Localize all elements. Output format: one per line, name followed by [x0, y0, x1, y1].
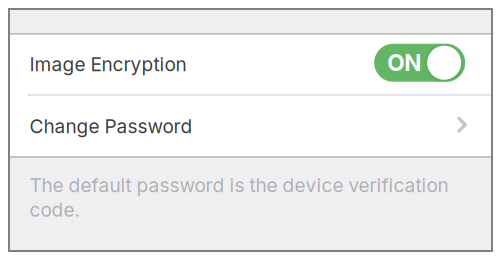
staticText: ON — [387, 49, 421, 76]
staticText: Image Encryption — [29, 53, 186, 76]
staticText: The default password is the device verif… — [29, 174, 448, 221]
button[interactable]: Image Encryption — [10, 34, 491, 94]
button[interactable]: Change Password — [10, 96, 491, 156]
button[interactable]: Image Encryption, on — [374, 44, 465, 82]
staticText: Change Password — [29, 115, 192, 138]
